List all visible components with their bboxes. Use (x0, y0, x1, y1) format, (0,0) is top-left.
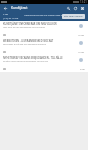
button[interactable]: Back (0, 4, 11, 12)
staticText: WEBBUTIKEN - LEVERANSBESKED SKICKAT (3, 39, 63, 42)
staticText: 3 GB (3, 13, 9, 16)
staticText: Kundtjänst (11, 6, 28, 10)
button[interactable]: Refresh (72, 4, 79, 12)
button[interactable]: NYHETSBREV VECKANS ERBJUDANDEN - TILLFÄL… (0, 55, 88, 72)
button[interactable]: KÖP MER LAGRING (62, 14, 85, 19)
staticText: 15 jan (78, 34, 85, 37)
button[interactable]: KUNDTJÄNST INFORMERAR OM NYA VILLKOR (0, 21, 88, 38)
staticText: 13:21 (80, 0, 87, 4)
button[interactable]: WEBBUTIKEN - LEVERANSBESKED SKICKAT (0, 38, 88, 55)
staticText: Se vårt stora utbud av produkter nu hos … (3, 60, 55, 63)
staticText: Lagringsutrymmet har nästan tagit slut (24, 14, 65, 17)
staticText: (1 %) av 15 GB (3, 17, 19, 20)
button[interactable]: More options (79, 4, 86, 12)
staticText: 9 jan (80, 68, 85, 71)
staticText: NYHETSBREV VECKANS ERBJUDANDEN - TILLFÄL… (3, 56, 63, 59)
staticText: Hej! Tack för din beställning hos oss id… (3, 26, 55, 29)
staticText: KUNDTJÄNST INFORMERAR OM NYA VILLKOR (3, 22, 63, 25)
staticText: Ditt paket är på väg och beräknas komma (3, 43, 55, 46)
staticText: KÖP MER LAGRING (64, 15, 83, 18)
staticText: 12 jan (78, 51, 85, 54)
button[interactable]: Search (65, 4, 72, 12)
